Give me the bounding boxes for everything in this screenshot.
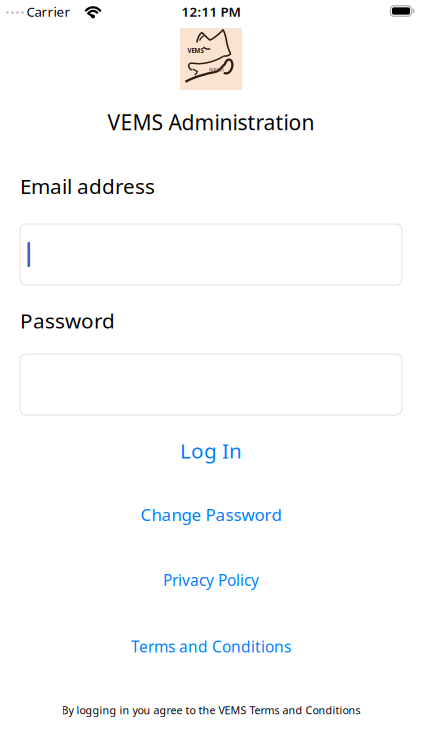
button[interactable]: Terms and Conditions	[131, 636, 291, 657]
staticText: VEMS Administration	[107, 108, 314, 136]
button[interactable]: Log In	[180, 436, 242, 464]
button[interactable]: Privacy Policy	[163, 569, 259, 591]
button[interactable]: Change Password	[140, 503, 281, 526]
staticText: Terms and Conditions	[131, 636, 291, 657]
staticText: Password	[20, 306, 115, 334]
staticText: Email address	[20, 172, 155, 200]
staticText: By logging in you agree to the VEMS Term…	[61, 703, 360, 717]
staticText: Admin	[209, 66, 224, 73]
staticText: Carrier	[26, 3, 70, 20]
staticText: Privacy Policy	[163, 569, 259, 591]
staticText: Log In	[180, 436, 242, 464]
staticText: Change Password	[140, 503, 281, 526]
staticText: 12:11 PM	[181, 3, 240, 20]
staticText: VEMS	[187, 46, 203, 55]
textField[interactable]	[29, 242, 402, 267]
